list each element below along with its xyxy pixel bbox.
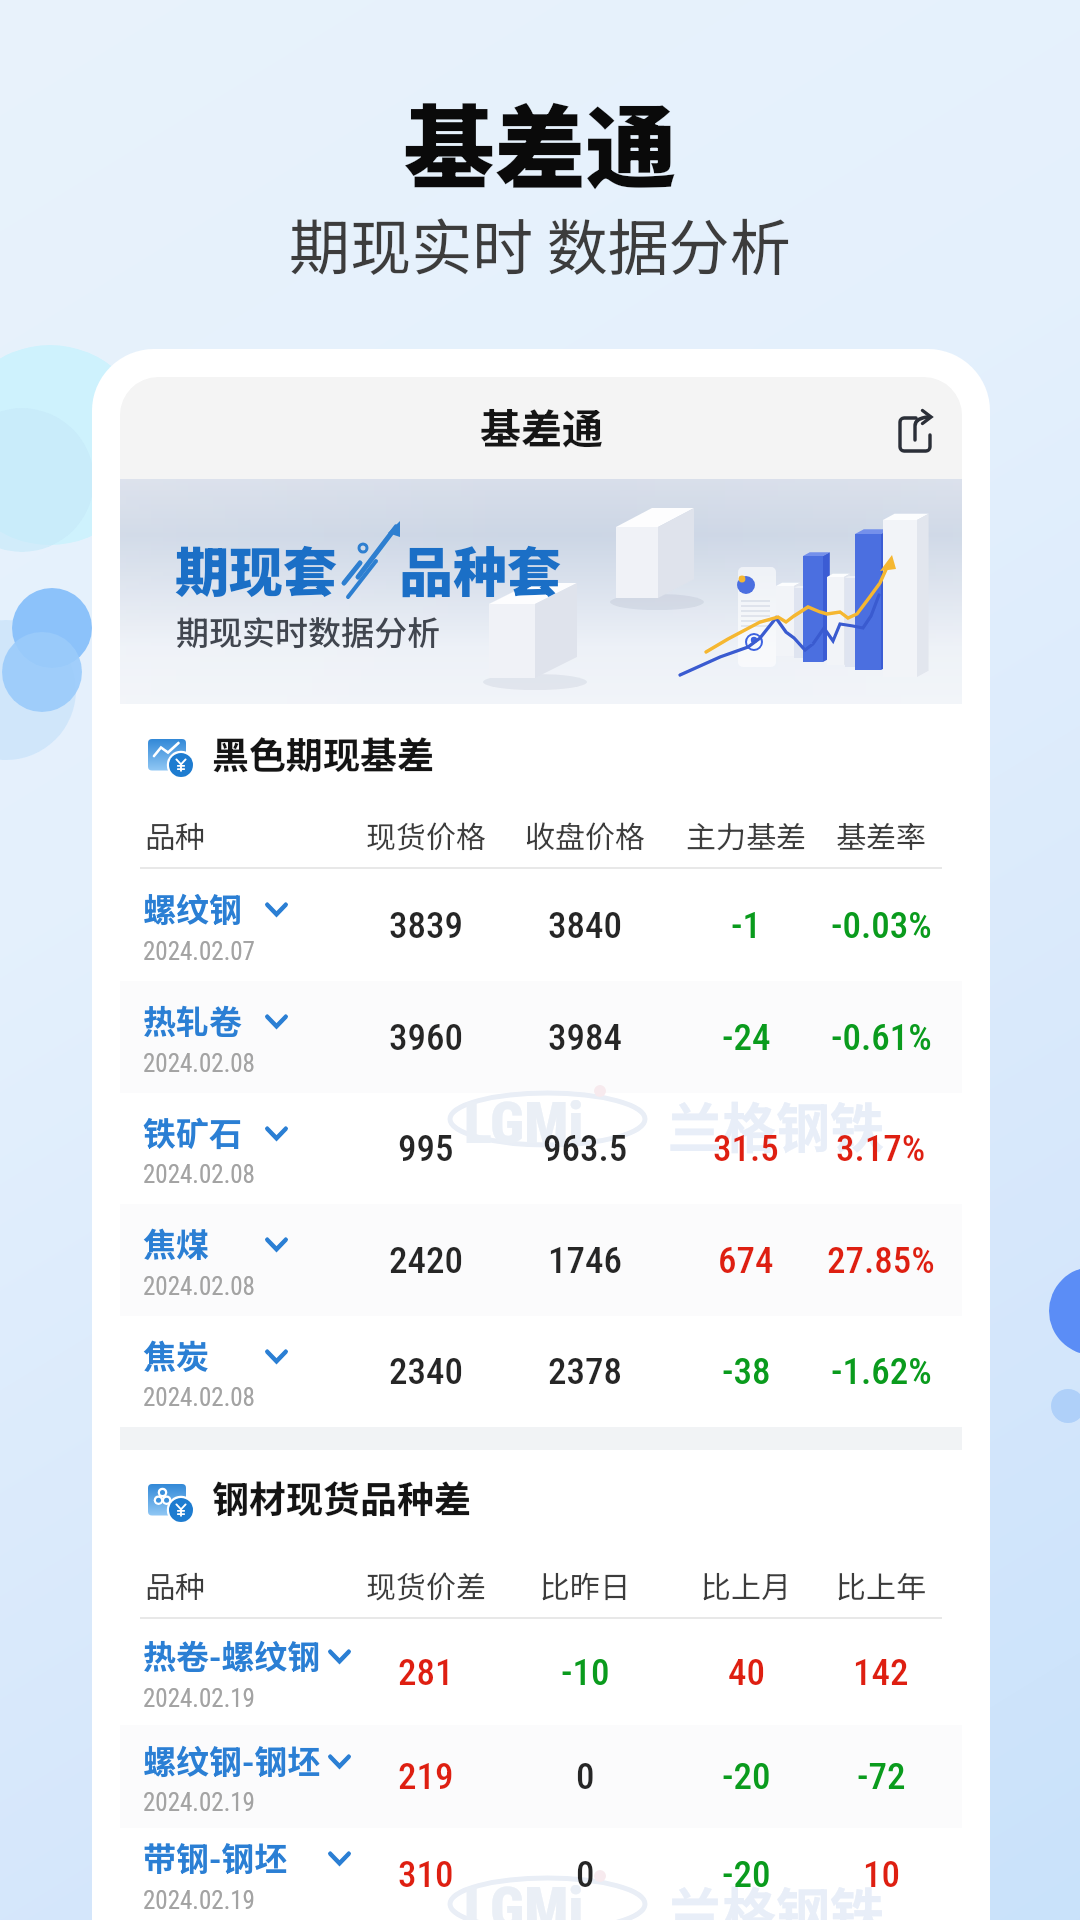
staticText: 310: [398, 1853, 454, 1896]
staticText: 期现实时 数据分析: [0, 199, 1080, 287]
staticText: 2024.02.08: [143, 1049, 255, 1078]
staticText: 3.17%: [836, 1127, 926, 1170]
staticText: 0: [576, 1755, 595, 1798]
staticText: 焦煤: [143, 1219, 209, 1267]
staticText: 281: [398, 1651, 454, 1694]
button[interactable]: Expand: [261, 894, 291, 924]
staticText: -38: [722, 1350, 771, 1393]
button[interactable]: 黑色期现基差: [120, 704, 962, 790]
staticText: 收盘价格: [525, 813, 645, 856]
staticText: 黑色期现基差: [212, 726, 434, 780]
button[interactable]: 螺纹钢-钢坯: [120, 1725, 962, 1828]
staticText: 钢材现货品种差: [212, 1470, 471, 1524]
button[interactable]: Expand: [261, 1118, 291, 1148]
button[interactable]: Expand: [261, 1341, 291, 1371]
staticText: 基差通: [480, 396, 603, 455]
staticText: LGMi: [464, 1089, 584, 1157]
staticText: 品种套: [399, 529, 561, 607]
button[interactable]: Expand: [324, 1843, 354, 1873]
staticText: 主力基差: [686, 813, 806, 856]
staticText: 963.5: [543, 1127, 628, 1170]
staticText: 螺纹钢: [143, 884, 242, 932]
staticText: 热卷-螺纹钢: [143, 1631, 321, 1679]
staticText: 热轧卷: [143, 996, 242, 1044]
staticText: 品种: [145, 813, 205, 856]
button[interactable]: LGMi: [120, 1093, 962, 1204]
button[interactable]: 焦炭: [120, 1316, 962, 1427]
staticText: 2024.02.08: [143, 1383, 255, 1412]
staticText: 基差率: [836, 813, 926, 856]
staticText: 期现套: [175, 529, 337, 607]
staticText: 比昨日: [540, 1563, 630, 1606]
staticText: 带钢-钢坯: [143, 1833, 288, 1881]
staticText: 2378: [548, 1350, 622, 1393]
staticText: 27.85%: [827, 1239, 935, 1282]
staticText: 2340: [389, 1350, 463, 1393]
staticText: 31.5: [713, 1127, 779, 1170]
staticText: 2024.02.07: [143, 937, 255, 966]
staticText: 1746: [548, 1239, 622, 1282]
button[interactable]: Expand: [261, 1229, 291, 1259]
staticText: 期现实时数据分析: [176, 607, 440, 655]
staticText: LGMi: [464, 1874, 584, 1920]
staticText: 674: [718, 1239, 774, 1282]
staticText: 3984: [548, 1016, 622, 1059]
staticText: 螺纹钢-钢坯: [143, 1736, 321, 1784]
staticText: 3960: [389, 1016, 463, 1059]
button[interactable]: Expand: [261, 1006, 291, 1036]
staticText: 2420: [389, 1239, 463, 1282]
button[interactable]: Share: [885, 397, 947, 459]
staticText: -10: [561, 1651, 610, 1694]
staticText: 10: [863, 1853, 900, 1896]
staticText: 142: [853, 1651, 909, 1694]
staticText: -20: [722, 1853, 771, 1896]
staticText: 2024.02.08: [143, 1272, 255, 1301]
staticText: 铁矿石: [143, 1108, 242, 1156]
button[interactable]: 热卷-螺纹钢: [120, 1619, 962, 1725]
staticText: 比上月: [701, 1563, 791, 1606]
button[interactable]: LGMi: [120, 1828, 962, 1920]
staticText: -24: [722, 1016, 771, 1059]
staticText: 品种: [145, 1563, 205, 1606]
staticText: -1.62%: [831, 1350, 932, 1393]
staticText: -72: [857, 1755, 906, 1798]
staticText: 兰格钢铁: [668, 1870, 884, 1920]
button[interactable]: Expand: [324, 1641, 354, 1671]
staticText: -0.61%: [831, 1016, 932, 1059]
staticText: 0: [576, 1853, 595, 1896]
staticText: 基差通: [0, 75, 1080, 207]
staticText: 现货价差: [366, 1563, 486, 1606]
staticText: 40: [728, 1651, 765, 1694]
button[interactable]: 热轧卷: [120, 981, 962, 1093]
staticText: 比上年: [836, 1563, 926, 1606]
staticText: 2024.02.19: [143, 1684, 255, 1713]
staticText: 3839: [389, 904, 463, 947]
button[interactable]: 钢材现货品种差: [120, 1450, 962, 1540]
staticText: -0.03%: [831, 904, 932, 947]
staticText: 兰格钢铁: [668, 1085, 884, 1163]
staticText: -1: [731, 904, 761, 947]
staticText: 现货价格: [366, 813, 486, 856]
staticText: 2024.02.19: [143, 1886, 255, 1915]
staticText: 2024.02.19: [143, 1788, 255, 1817]
staticText: -20: [722, 1755, 771, 1798]
staticText: 219: [398, 1755, 454, 1798]
staticText: 3840: [548, 904, 622, 947]
button[interactable]: 螺纹钢: [120, 869, 962, 981]
button[interactable]: 焦煤: [120, 1204, 962, 1316]
staticText: 2024.02.08: [143, 1160, 255, 1189]
staticText: 995: [398, 1127, 454, 1170]
staticText: 焦炭: [143, 1331, 209, 1379]
button[interactable]: Expand: [324, 1746, 354, 1776]
